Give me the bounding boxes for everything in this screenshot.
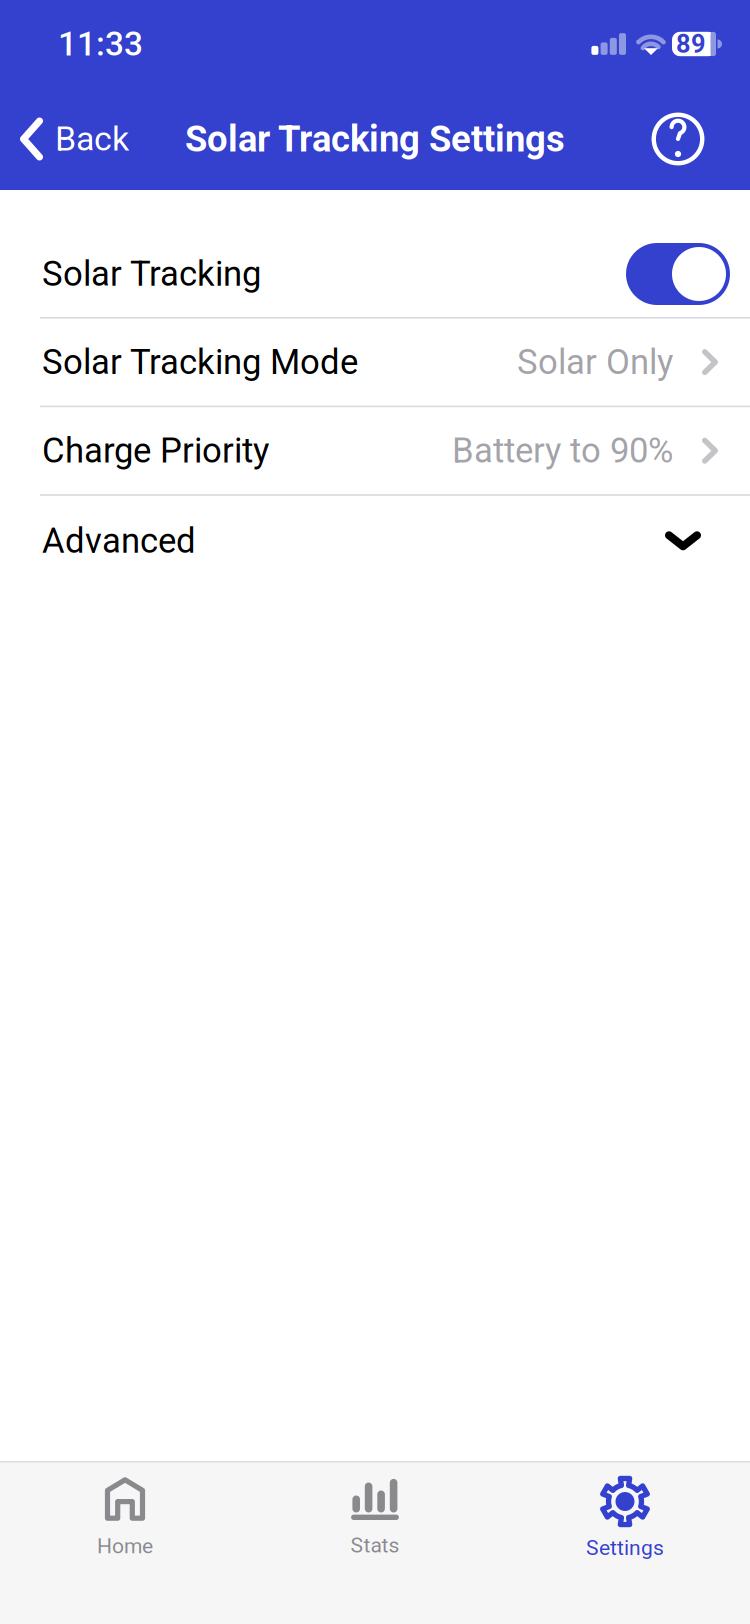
button[interactable]: Help <box>638 101 750 177</box>
staticText: Battery to 90% <box>452 430 673 471</box>
staticText: 89 <box>676 29 706 59</box>
button[interactable]: Solar Tracking Mode <box>0 319 750 406</box>
staticText: Advanced <box>42 520 196 561</box>
button[interactable]: Charge Priority <box>0 407 750 494</box>
staticText: Back <box>55 119 129 159</box>
staticText: Solar Only <box>517 342 673 382</box>
staticText: Home <box>97 1534 153 1558</box>
staticText: Solar Tracking Mode <box>42 342 358 382</box>
staticText: Stats <box>350 1533 399 1558</box>
staticText: Solar Tracking <box>42 254 261 294</box>
button[interactable]: Advanced <box>0 496 750 586</box>
button[interactable]: Back <box>0 103 143 174</box>
button[interactable]: Stats <box>250 1465 500 1588</box>
staticText: Solar Tracking Settings <box>185 118 565 160</box>
staticText: Charge Priority <box>42 430 269 471</box>
staticText: 11:33 <box>58 24 143 64</box>
staticText: Settings <box>586 1535 664 1560</box>
button[interactable]: Solar Tracking <box>616 233 750 315</box>
button[interactable]: Settings <box>500 1462 750 1590</box>
button[interactable]: Home <box>0 1464 250 1588</box>
